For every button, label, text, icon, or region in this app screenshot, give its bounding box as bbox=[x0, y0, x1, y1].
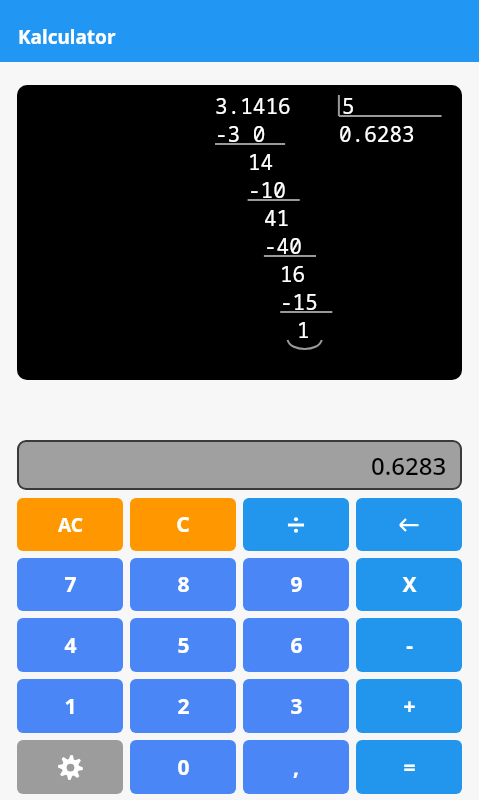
staticText: 1 bbox=[64, 692, 77, 721]
staticText: 5 bbox=[342, 92, 355, 121]
staticText: 3 bbox=[290, 692, 303, 721]
staticText: C bbox=[176, 510, 190, 539]
staticText: 7 bbox=[64, 570, 77, 599]
staticText: 0.6283 bbox=[371, 449, 447, 482]
staticText: AC bbox=[58, 512, 83, 538]
button[interactable]: C bbox=[130, 498, 236, 551]
staticText: 5 bbox=[177, 631, 190, 660]
button[interactable]: + bbox=[356, 679, 462, 733]
button[interactable]: 0 bbox=[130, 740, 236, 794]
button[interactable]: 0.6283 bbox=[17, 440, 462, 490]
button[interactable]: 7 bbox=[17, 558, 123, 611]
button[interactable]: Divide bbox=[243, 498, 349, 551]
button[interactable]: 2 bbox=[130, 679, 236, 733]
staticText: + bbox=[403, 692, 416, 721]
button[interactable]: 1 bbox=[17, 679, 123, 733]
staticText: -40 bbox=[264, 232, 302, 261]
staticText: -10 bbox=[248, 176, 286, 205]
button[interactable]: 6 bbox=[243, 618, 349, 672]
button[interactable]: 3 bbox=[243, 679, 349, 733]
button[interactable]: Backspace bbox=[356, 498, 462, 551]
staticText: 4 bbox=[64, 631, 77, 660]
staticText: 9 bbox=[290, 570, 303, 599]
staticText: Kalculator bbox=[18, 24, 116, 50]
staticText: = bbox=[403, 753, 416, 782]
staticText: 0.6283 bbox=[339, 120, 415, 149]
staticText: 2 bbox=[177, 692, 190, 721]
button[interactable]: 8 bbox=[130, 558, 236, 611]
staticText: 8 bbox=[177, 570, 190, 599]
staticText: 41 bbox=[264, 204, 290, 233]
staticText: , bbox=[293, 753, 299, 782]
staticText: - bbox=[406, 631, 413, 660]
button[interactable]: 5 bbox=[130, 618, 236, 672]
button[interactable]: 9 bbox=[243, 558, 349, 611]
staticText: -3 0 bbox=[215, 120, 266, 149]
staticText: 14 bbox=[248, 148, 274, 177]
button[interactable]: 4 bbox=[17, 618, 123, 672]
button[interactable]: , bbox=[243, 740, 349, 794]
staticText: -15 bbox=[280, 288, 318, 317]
button[interactable]: - bbox=[356, 618, 462, 672]
staticText: 0 bbox=[177, 753, 190, 782]
staticText: 1 bbox=[297, 316, 310, 345]
button[interactable]: X bbox=[356, 558, 462, 611]
staticText: X bbox=[402, 570, 417, 599]
staticText: 16 bbox=[280, 260, 306, 289]
button[interactable]: AC bbox=[17, 498, 123, 551]
button[interactable]: Settings bbox=[17, 740, 123, 794]
button[interactable]: = bbox=[356, 740, 462, 794]
staticText: 6 bbox=[290, 631, 303, 660]
staticText: 3.1416 bbox=[215, 92, 291, 121]
